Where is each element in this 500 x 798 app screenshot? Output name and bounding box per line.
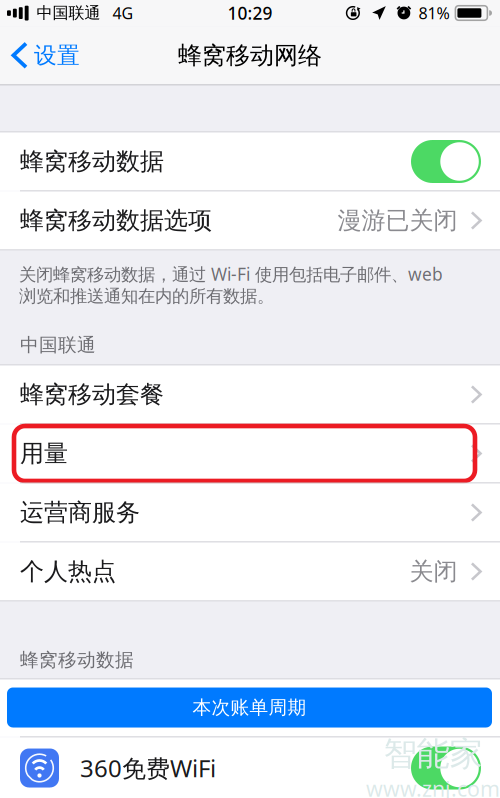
button[interactable]: 本次账单周期 [0, 679, 500, 736]
staticText: 设置 [34, 42, 80, 69]
staticText: 本次账单周期 [192, 696, 306, 719]
staticText: 中国联通 [20, 334, 96, 356]
staticText: 10:29 [227, 1, 272, 24]
staticText: 关闭蜂窝移动数据，通过 Wi-Fi 使用包括电子邮件、web 浏览和推送通知在内… [19, 262, 443, 307]
staticText: 360免费WiFi [80, 752, 216, 784]
button[interactable]: 运营商服务 [0, 483, 500, 541]
staticText: 蜂窝移动数据 [20, 649, 134, 671]
staticText: 关闭 [409, 557, 457, 586]
staticText: 漫游已关闭 [337, 206, 457, 235]
staticText: www.znj.com [366, 774, 500, 798]
staticText: 蜂窝移动数据 [20, 147, 164, 176]
staticText: 个人热点 [20, 557, 116, 586]
staticText: 用量 [20, 439, 68, 468]
staticText: 智能家 [383, 733, 482, 774]
button[interactable]: 蜂窝移动套餐 [0, 365, 500, 423]
button[interactable]: 蜂窝移动数据选项 [0, 191, 500, 249]
button[interactable]: 用量 [0, 424, 500, 482]
staticText: 中国联通 [37, 3, 101, 23]
staticText: 蜂窝移动网络 [178, 41, 322, 70]
button[interactable]: 蜂窝移动数据 [411, 140, 481, 183]
staticText: 4G [113, 2, 134, 24]
staticText: 蜂窝移动套餐 [20, 380, 164, 409]
button[interactable]: 设置 [0, 26, 90, 84]
staticText: 运营商服务 [20, 498, 140, 527]
staticText: 81% [418, 2, 449, 24]
button[interactable]: 360免费WiFi [411, 746, 481, 789]
staticText: 蜂窝移动数据选项 [20, 206, 212, 235]
button[interactable]: 个人热点 [0, 542, 500, 600]
